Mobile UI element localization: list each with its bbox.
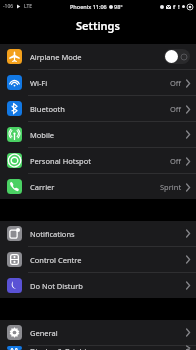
button[interactable]: Personal Hotspot [0,148,196,173]
staticText: Sprint [160,182,182,192]
staticText: Off [170,78,182,88]
button[interactable]: Notifications [0,221,196,246]
staticText: Control Centre [30,255,186,265]
button[interactable]: Airplane Mode [0,44,196,69]
button[interactable]: Airplane Mode toggle [164,49,190,64]
staticText: Airplane Mode [30,52,164,62]
staticText: -106 [3,3,14,10]
staticText: Personal Hotspot [30,156,170,166]
staticText: Notifications [30,229,186,239]
staticText: Off [170,156,182,166]
staticText: Phoenix 11:06 [70,3,107,10]
staticText: Bluetooth [30,104,170,114]
staticText: Off [170,104,182,114]
button[interactable]: Carrier [0,174,196,199]
staticText: Wi-Fi [30,78,170,88]
staticText: Mobile [30,130,186,140]
staticText: Do Not Disturb [30,281,186,291]
button[interactable]: AA [0,346,196,350]
staticText: 98° [114,3,123,10]
staticText: Settings [76,18,120,33]
button[interactable]: Do Not Disturb [0,273,196,298]
staticText: General [30,328,186,338]
staticText: ! [178,3,180,10]
button[interactable]: Wi-Fi [0,70,196,95]
staticText: LTE [24,3,33,10]
button[interactable]: Bluetooth [0,96,196,121]
staticText: Display & Brightness [30,346,186,350]
staticText: Carrier [30,182,160,192]
button[interactable]: General [0,320,196,345]
button[interactable]: Control Centre [0,247,196,272]
staticText: AA [10,346,19,350]
staticText: f [173,3,176,10]
button[interactable]: Mobile [0,122,196,147]
